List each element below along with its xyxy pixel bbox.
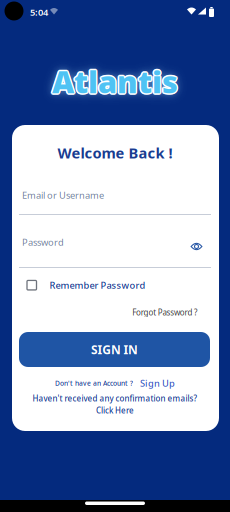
staticText: Atlantis	[52, 61, 178, 102]
staticText: Forgot Password ?	[132, 307, 197, 318]
button[interactable]: Email or Username	[19, 187, 211, 215]
button[interactable]: Password	[19, 236, 211, 264]
staticText: Atlantis	[52, 61, 178, 102]
staticText: Welcome Back !	[57, 143, 172, 162]
staticText: Click Here	[96, 405, 134, 416]
staticText: Atlantis	[51, 62, 177, 103]
staticText: Atlantis	[52, 61, 178, 102]
button[interactable]: SIGN IN	[19, 332, 210, 367]
staticText: Atlantis	[52, 62, 178, 103]
staticText: SIGN IN	[91, 341, 138, 357]
button[interactable]: Show password	[190, 242, 202, 251]
button[interactable]: Sign Up	[140, 377, 175, 389]
staticText: Atlantis	[52, 60, 178, 100]
button[interactable]: Remember Password	[27, 279, 145, 291]
staticText: Atlantis	[53, 60, 179, 101]
staticText: Password	[22, 236, 64, 248]
staticText: Email or Username	[22, 189, 104, 201]
staticText: 5:04	[30, 6, 48, 18]
button[interactable]: Click Here	[96, 405, 134, 416]
staticText: Don't have an Account ?	[55, 379, 133, 388]
staticText: Atlantis	[51, 61, 177, 102]
staticText: Atlantis	[51, 60, 177, 101]
button[interactable]: Forgot Password ?	[132, 307, 197, 318]
staticText: Remember Password	[49, 279, 145, 291]
staticText: Atlantis	[53, 62, 179, 103]
staticText: Haven't received any confirmation emails…	[32, 393, 197, 404]
staticText: Sign Up	[140, 377, 175, 389]
staticText: Atlantis	[53, 61, 179, 102]
